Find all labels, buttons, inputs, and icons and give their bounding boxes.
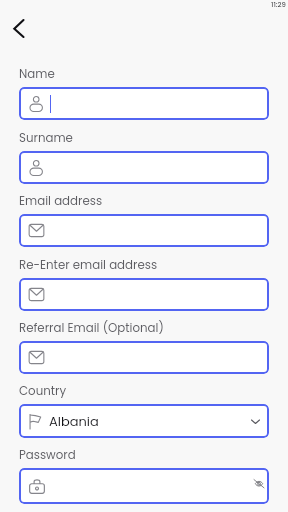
button[interactable]: Show password (254, 479, 264, 489)
staticText: Re-Enter email address (19, 257, 158, 274)
staticText: Referral Email (Optional) (19, 320, 164, 337)
staticText: Country (19, 383, 67, 400)
other: Expand country list (251, 417, 260, 426)
button[interactable] (19, 87, 269, 120)
button[interactable] (19, 341, 269, 374)
button[interactable]: Albania (19, 404, 269, 438)
button[interactable] (19, 151, 269, 184)
button[interactable] (19, 214, 269, 247)
staticText: Name (19, 66, 55, 83)
staticText: Password (19, 447, 76, 464)
staticText: Surname (19, 130, 73, 147)
button[interactable]: Show password (19, 468, 269, 504)
staticText: 11:29 (271, 0, 286, 10)
staticText: Albania (49, 412, 99, 430)
staticText: Email address (19, 193, 103, 210)
button[interactable]: Back (6, 14, 34, 42)
button[interactable] (19, 278, 269, 311)
